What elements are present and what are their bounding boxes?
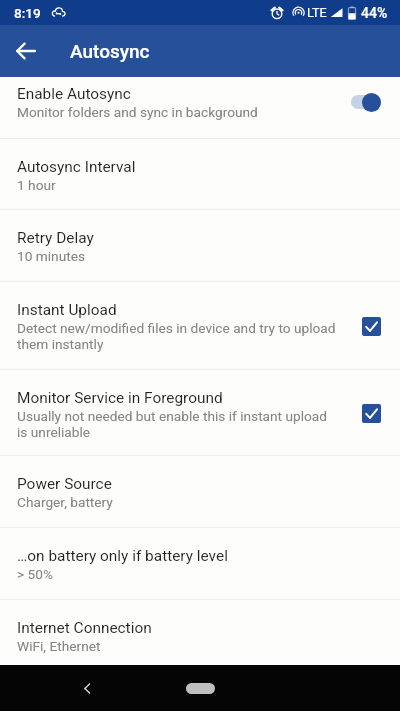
button[interactable]: Power Source [0, 456, 400, 527]
staticText: Monitor folders and sync in background [17, 104, 258, 120]
button[interactable]: Enable Autosync [0, 77, 400, 138]
staticText: Monitor Service in Foreground [17, 389, 223, 407]
staticText: Retry Delay [17, 229, 94, 247]
staticText: Autosync Interval [17, 158, 136, 176]
staticText: > 50% [17, 566, 53, 582]
button[interactable]: …on battery only if battery level [0, 528, 400, 599]
button[interactable]: Checkbox [358, 400, 384, 426]
staticText: Charger, battery [17, 494, 113, 510]
staticText: 10 minutes [17, 248, 86, 264]
staticText: 8:19 [14, 5, 41, 21]
staticText: Power Source [17, 475, 112, 493]
staticText: Internet Connection [17, 619, 152, 637]
button[interactable]: Retry Delay [0, 210, 400, 281]
button[interactable]: Checkbox [358, 313, 384, 339]
staticText: LTE [307, 5, 327, 20]
staticText: WiFi, Ethernet [17, 638, 101, 654]
staticText: 44% [361, 5, 388, 21]
button[interactable]: Autosync Interval [0, 139, 400, 209]
staticText: Autosync [70, 40, 150, 62]
button[interactable]: Internet Connection [0, 600, 400, 665]
staticText: …on battery only if battery level [17, 547, 228, 565]
button[interactable]: Instant Upload [0, 282, 400, 369]
button[interactable]: Enable Autosync toggle [346, 85, 384, 119]
staticText: Detect new/modified files in device and … [17, 320, 336, 353]
staticText: Instant Upload [17, 301, 117, 319]
button[interactable]: Back [70, 671, 104, 705]
staticText: Enable Autosync [17, 85, 131, 103]
staticText: Usually not needed but enable this if in… [17, 408, 336, 441]
button[interactable]: Back [0, 25, 52, 77]
staticText: 1 hour [17, 177, 56, 193]
button[interactable]: Home [186, 683, 215, 694]
button[interactable]: Monitor Service in Foreground [0, 370, 400, 455]
